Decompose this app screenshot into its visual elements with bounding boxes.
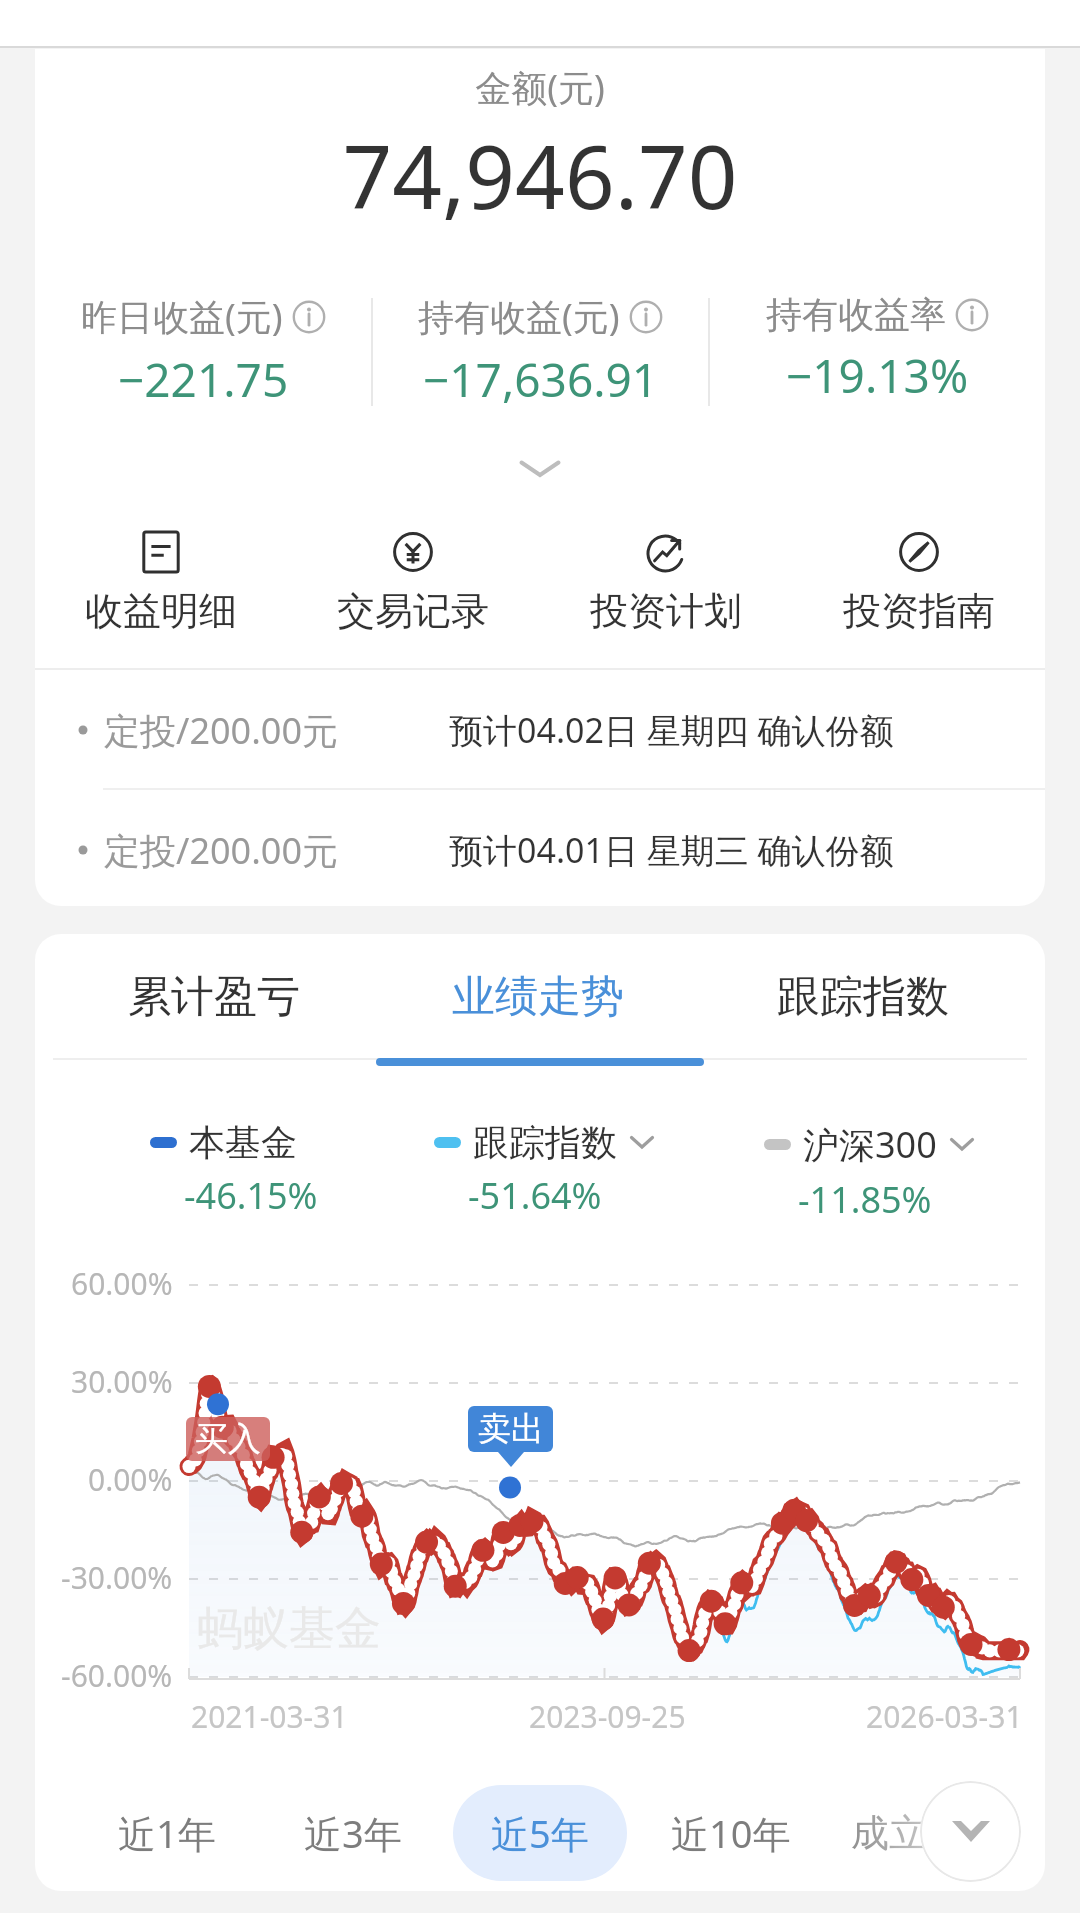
staticText: 0.00% [88, 1459, 173, 1500]
staticText: 收益明细 [85, 587, 237, 635]
staticText: 跟踪指数 [473, 1120, 617, 1165]
button[interactable]: 卖出 [468, 1406, 553, 1452]
staticText: 本基金 [189, 1120, 297, 1165]
staticText: 预计04.01日 星期三 确认份额 [449, 827, 894, 873]
staticText: 2021-03-31 [191, 1696, 348, 1737]
button[interactable]: Expand details [35, 447, 1045, 491]
staticText: 定投/200.00元 [104, 826, 339, 875]
staticText: 30.00% [71, 1361, 173, 1402]
staticText: -60.00% [61, 1655, 173, 1696]
staticText: −221.75 [118, 348, 289, 411]
button[interactable]: 跟踪指数 [434, 1120, 655, 1220]
staticText: 沪深300 [803, 1120, 937, 1169]
other: Info [292, 300, 326, 334]
staticText: 跟踪指数 [777, 970, 949, 1024]
staticText: 投资指南 [843, 587, 995, 635]
button[interactable]: 交易记录 [287, 532, 539, 635]
staticText: 近5年 [491, 1807, 589, 1859]
button[interactable]: 本基金 [150, 1120, 297, 1220]
staticText: −19.13% [786, 344, 969, 407]
staticText: 交易记录 [337, 587, 489, 635]
button[interactable]: 成立来 [813, 1787, 1003, 1879]
staticText: 2026-03-31 [866, 1696, 1023, 1737]
button[interactable]: 定投/200.00元 [35, 800, 1045, 900]
button[interactable]: 沪深300 [764, 1120, 975, 1224]
button[interactable]: 近1年 [80, 1785, 254, 1881]
button[interactable]: 跟踪指数 [753, 934, 973, 1060]
staticText: 成立来 [851, 1809, 965, 1857]
staticText: −17,636.91 [423, 348, 659, 411]
staticText: 昨日收益(元) [81, 292, 283, 341]
staticText: 买入 [195, 1418, 261, 1460]
other: Info [629, 300, 663, 334]
button[interactable]: 近5年 [453, 1785, 627, 1881]
staticText: 累计盈亏 [128, 970, 300, 1024]
button[interactable]: 近10年 [633, 1785, 829, 1881]
staticText: 2023-09-25 [529, 1696, 686, 1737]
button[interactable]: 累计盈亏 [104, 934, 324, 1060]
button[interactable]: 业绩走势 [428, 934, 648, 1060]
staticText: 业绩走势 [452, 970, 624, 1024]
staticText: 60.00% [71, 1263, 173, 1304]
button[interactable]: 持有收益(元) [373, 292, 708, 411]
button[interactable]: 昨日收益(元) [35, 292, 371, 411]
button[interactable]: 持有收益率 [710, 292, 1045, 407]
staticText: 近1年 [118, 1807, 216, 1859]
staticText: 持有收益率 [766, 292, 946, 337]
staticText: 金额(元) [35, 63, 1045, 112]
staticText: -46.15% [184, 1171, 318, 1220]
staticText: -11.85% [798, 1175, 932, 1224]
staticText: -51.64% [468, 1171, 602, 1220]
staticText: -30.00% [61, 1557, 173, 1598]
button[interactable]: 收益明细 [35, 532, 287, 635]
staticText: 蚂蚁基金 [197, 1600, 381, 1658]
staticText: 预计04.02日 星期四 确认份额 [449, 707, 894, 753]
staticText: 近3年 [304, 1807, 402, 1859]
button[interactable]: 买入 [186, 1417, 270, 1461]
staticText: 74,946.70 [35, 116, 1045, 234]
staticText: 定投/200.00元 [104, 706, 339, 755]
button[interactable]: 投资计划 [539, 532, 792, 635]
button[interactable]: More ranges [920, 1781, 1021, 1882]
staticText: 投资计划 [590, 587, 742, 635]
button[interactable]: 投资指南 [792, 532, 1045, 635]
other: Info [955, 298, 989, 332]
button[interactable]: 近3年 [266, 1785, 440, 1881]
staticText: 近10年 [671, 1807, 791, 1859]
staticText: 卖出 [478, 1408, 544, 1450]
staticText: 持有收益(元) [418, 292, 620, 341]
button[interactable]: 定投/200.00元 [35, 680, 1045, 780]
